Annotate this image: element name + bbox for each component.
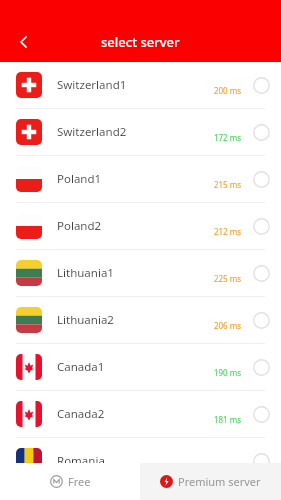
staticText: 206 ms [193,320,241,331]
button[interactable]: Lithuania2 [0,297,281,343]
button[interactable]: Select Poland1 [249,167,273,191]
staticText: 212 ms [193,226,241,237]
staticText: Romania [57,453,193,469]
staticText: Canada2 [57,406,193,422]
staticText: Free [68,474,91,489]
button[interactable]: Switzerland1 [0,62,281,108]
staticText: 225 ms [193,273,241,284]
staticText: 195 ms [193,461,241,472]
staticText: Canada1 [57,359,193,375]
staticText: select server [101,33,180,51]
staticText: Poland2 [57,218,193,234]
button[interactable]: Select Lithuania2 [249,308,273,332]
button[interactable]: Switzerland2 [0,109,281,155]
staticText: Premium server [178,474,261,489]
button[interactable]: Poland1 [0,156,281,202]
staticText: Switzerland2 [57,124,193,140]
staticText: 172 ms [193,132,241,143]
staticText: Lithuania1 [57,265,193,281]
staticText: Switzerland1 [57,77,193,93]
button[interactable]: Select Lithuania1 [249,261,273,285]
staticText: 190 ms [193,367,241,378]
button[interactable]: Select Switzerland2 [249,120,273,144]
button[interactable]: Select Canada2 [249,402,273,426]
button[interactable]: Lithuania1 [0,250,281,296]
staticText: 200 ms [193,85,241,96]
button[interactable]: Poland2 [0,203,281,249]
button[interactable]: Romania [0,438,281,484]
staticText: 215 ms [193,179,241,190]
button[interactable]: Back [4,22,44,62]
button[interactable]: Select Switzerland1 [249,73,273,97]
button[interactable]: Canada2 [0,391,281,437]
staticText: Lithuania2 [57,312,193,328]
button[interactable]: Select Canada1 [249,355,273,379]
button[interactable]: Canada1 [0,344,281,390]
staticText: 181 ms [193,414,241,425]
button[interactable]: Premium server [140,463,281,500]
button[interactable]: Free [0,463,140,500]
button[interactable]: Select Romania [249,449,273,473]
button[interactable]: Select Poland2 [249,214,273,238]
staticText: Poland1 [57,171,193,187]
